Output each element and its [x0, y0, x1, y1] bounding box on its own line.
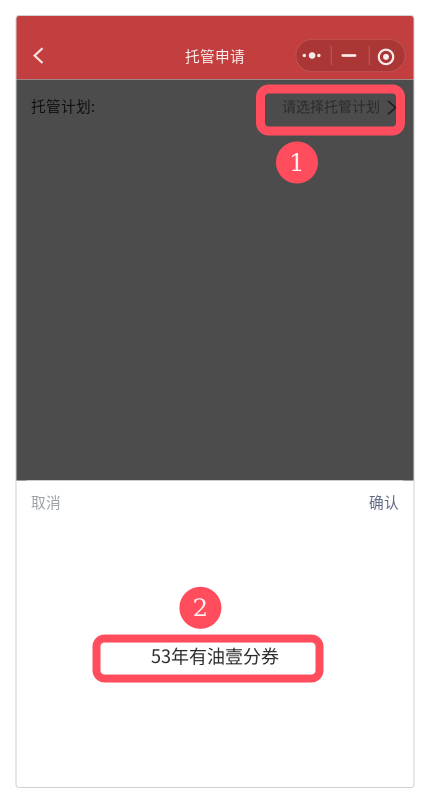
- staticText: 2: [192, 593, 208, 622]
- button[interactable]: Back: [16, 31, 64, 79]
- button[interactable]: More options: [296, 39, 405, 71]
- button[interactable]: 确认: [354, 480, 414, 522]
- staticText: 托管计划:: [31, 95, 95, 116]
- staticText: 取消: [31, 491, 61, 512]
- staticText: 1: [289, 148, 305, 177]
- button[interactable]: 托管计划:: [16, 79, 414, 131]
- staticText: 托管申请: [185, 45, 245, 66]
- button[interactable]: 53年有油壹分券: [16, 638, 414, 672]
- staticText: 确认: [369, 491, 399, 512]
- staticText: 53年有油壹分券: [151, 642, 279, 669]
- button[interactable]: 取消: [16, 480, 76, 522]
- staticText: 请选择托管计划: [282, 95, 380, 116]
